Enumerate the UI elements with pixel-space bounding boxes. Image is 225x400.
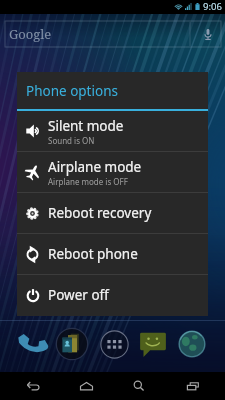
staticText: Sound is ON <box>48 135 95 146</box>
button[interactable]: Phone <box>13 326 49 362</box>
button[interactable]: Messaging <box>135 326 171 362</box>
button[interactable]: Power off <box>17 275 208 315</box>
button[interactable]: Reboot recovery <box>17 193 208 233</box>
staticText: Silent mode <box>48 117 124 135</box>
button[interactable]: Apps <box>96 326 132 362</box>
other: Voice search <box>204 28 212 41</box>
staticText: 9:06 <box>203 0 222 13</box>
staticText: Phone options <box>26 82 118 100</box>
staticText: Reboot recovery <box>48 204 152 222</box>
button[interactable]: Google <box>5 21 221 47</box>
button[interactable]: Silent mode <box>17 111 208 151</box>
button[interactable]: Home <box>64 372 108 400</box>
button[interactable]: Reboot phone <box>17 234 208 274</box>
button[interactable]: Back <box>10 372 54 400</box>
button[interactable]: Browser <box>174 326 210 362</box>
button[interactable]: Search <box>117 372 161 400</box>
staticText: Airplane mode is OFF <box>48 176 128 187</box>
staticText: Power off <box>48 286 109 304</box>
button[interactable]: People <box>54 326 90 362</box>
button[interactable]: Airplane mode <box>17 152 208 192</box>
button[interactable]: Recent apps <box>171 372 215 400</box>
staticText: Google <box>9 25 52 43</box>
staticText: Airplane mode <box>48 158 142 176</box>
staticText: Reboot phone <box>48 245 138 263</box>
